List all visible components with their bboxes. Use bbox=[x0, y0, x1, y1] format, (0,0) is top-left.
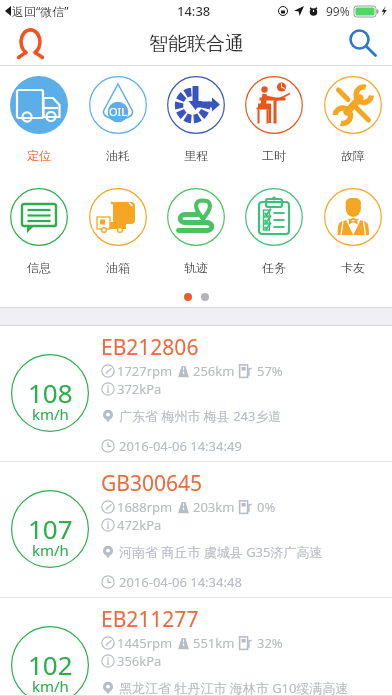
staticText: 返回“微信” bbox=[12, 3, 69, 19]
button[interactable]: Profile bbox=[0, 22, 60, 66]
staticText: 轨迹 bbox=[184, 260, 208, 275]
staticText: 472kPa bbox=[117, 516, 162, 534]
button[interactable]: 107 bbox=[0, 462, 392, 598]
staticText: 定位 bbox=[27, 148, 51, 163]
staticText: 0% bbox=[257, 498, 276, 516]
staticText: 广东省 梅州市 梅县 243乡道 bbox=[119, 407, 282, 425]
staticText: 1727rpm bbox=[117, 362, 173, 380]
staticText: 油箱 bbox=[106, 260, 130, 275]
staticText: km/h bbox=[32, 404, 69, 424]
staticText: km/h bbox=[32, 676, 69, 696]
staticText: EB211277 bbox=[101, 605, 199, 634]
staticText: 99% bbox=[326, 3, 350, 19]
staticText: OIL bbox=[109, 104, 128, 119]
staticText: 14:38 bbox=[177, 2, 211, 20]
staticText: 107 bbox=[28, 511, 73, 546]
button[interactable]: 油箱 bbox=[79, 188, 157, 275]
button[interactable]: 故障 bbox=[314, 76, 392, 163]
staticText: GB300645 bbox=[101, 469, 203, 498]
staticText: 任务 bbox=[262, 260, 286, 275]
staticText: 里程 bbox=[184, 148, 208, 163]
staticText: 1688rpm bbox=[117, 498, 173, 516]
button[interactable]: 102 bbox=[0, 598, 392, 696]
staticText: 卡友 bbox=[341, 260, 365, 275]
staticText: 工时 bbox=[262, 148, 286, 163]
button[interactable]: 信息 bbox=[0, 188, 78, 275]
staticText: EB212806 bbox=[101, 333, 199, 362]
staticText: 551km bbox=[193, 634, 235, 652]
staticText: 河南省 商丘市 虞城县 G35济广高速 bbox=[119, 543, 323, 561]
staticText: 智能联合通 bbox=[149, 32, 244, 56]
staticText: 203km bbox=[193, 498, 235, 516]
staticText: 256km bbox=[193, 362, 235, 380]
staticText: 1445rpm bbox=[117, 634, 173, 652]
staticText: 黑龙江省 牡丹江市 海林市 G10绥满高速 bbox=[119, 679, 349, 696]
button[interactable]: OIL bbox=[79, 76, 157, 163]
button[interactable]: 108 bbox=[0, 326, 392, 462]
staticText: 2016-04-06 14:34:49 bbox=[119, 437, 242, 455]
staticText: km/h bbox=[32, 540, 69, 560]
staticText: 信息 bbox=[27, 260, 51, 275]
staticText: 108 bbox=[28, 375, 73, 410]
button[interactable]: 任务 bbox=[235, 188, 313, 275]
staticText: 油耗 bbox=[106, 148, 130, 163]
button[interactable]: 卡友 bbox=[314, 188, 392, 275]
button[interactable]: 轨迹 bbox=[157, 188, 235, 275]
button[interactable]: 工时 bbox=[235, 76, 313, 163]
staticText: 102 bbox=[28, 647, 73, 682]
staticText: 32% bbox=[257, 634, 283, 652]
staticText: 372kPa bbox=[117, 380, 162, 398]
staticText: 2016-04-06 14:34:48 bbox=[119, 573, 242, 591]
button[interactable]: 里程 bbox=[157, 76, 235, 163]
staticText: 故障 bbox=[341, 148, 365, 163]
button[interactable]: 定位 bbox=[0, 76, 78, 163]
button[interactable]: Search bbox=[334, 22, 392, 66]
staticText: 57% bbox=[257, 362, 283, 380]
staticText: 356kPa bbox=[117, 652, 162, 670]
